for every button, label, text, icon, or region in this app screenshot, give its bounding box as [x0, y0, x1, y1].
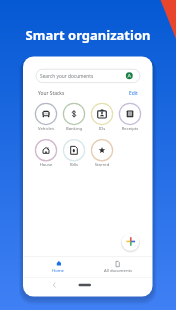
staticText: Banking — [52, 126, 96, 133]
button[interactable] — [88, 103, 116, 131]
staticText: Smart organization — [0, 26, 176, 310]
staticText: Your Stacks — [38, 90, 65, 97]
button[interactable] — [36, 69, 140, 83]
button[interactable] — [88, 258, 148, 277]
staticText: Edit — [129, 90, 138, 97]
staticText: Bills — [52, 162, 96, 169]
button[interactable] — [88, 139, 116, 167]
button[interactable] — [124, 86, 142, 96]
staticText: House — [24, 162, 68, 169]
staticText: Home — [36, 268, 80, 275]
button[interactable] — [60, 103, 88, 131]
staticText: Starred — [80, 162, 124, 169]
staticText: Vehicles — [24, 126, 68, 133]
button[interactable] — [32, 139, 60, 167]
staticText: Search your documents — [40, 73, 94, 80]
button[interactable] — [28, 258, 88, 277]
staticText: All documents — [96, 268, 140, 275]
button[interactable] — [60, 139, 88, 167]
staticText: IDs — [80, 126, 124, 133]
button[interactable] — [116, 103, 144, 131]
button[interactable] — [32, 103, 60, 131]
button[interactable]: Create new document — [122, 233, 140, 251]
staticText: Receipts — [108, 126, 152, 133]
